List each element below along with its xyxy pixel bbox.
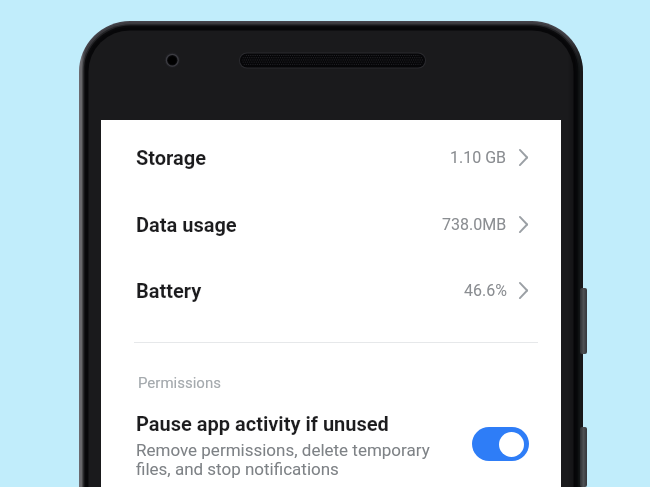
button[interactable]: Battery — [101, 257, 561, 323]
button[interactable]: Pause app activity if unused, on — [472, 427, 529, 461]
button[interactable]: Data usage — [101, 191, 561, 257]
staticText: 1.10 GB — [450, 148, 507, 167]
staticText: Permissions — [138, 374, 221, 392]
staticText: Remove permissions, delete temporary fil… — [136, 440, 430, 479]
button[interactable]: Pause app activity if unused — [101, 403, 457, 487]
staticText: 738.0MB — [442, 215, 507, 234]
staticText: Storage — [136, 146, 207, 169]
button[interactable]: Storage — [101, 124, 561, 190]
staticText: Data usage — [136, 213, 237, 236]
staticText: Battery — [136, 279, 202, 302]
staticText: 46.6% — [464, 281, 507, 300]
staticText: Pause app activity if unused — [136, 412, 389, 435]
